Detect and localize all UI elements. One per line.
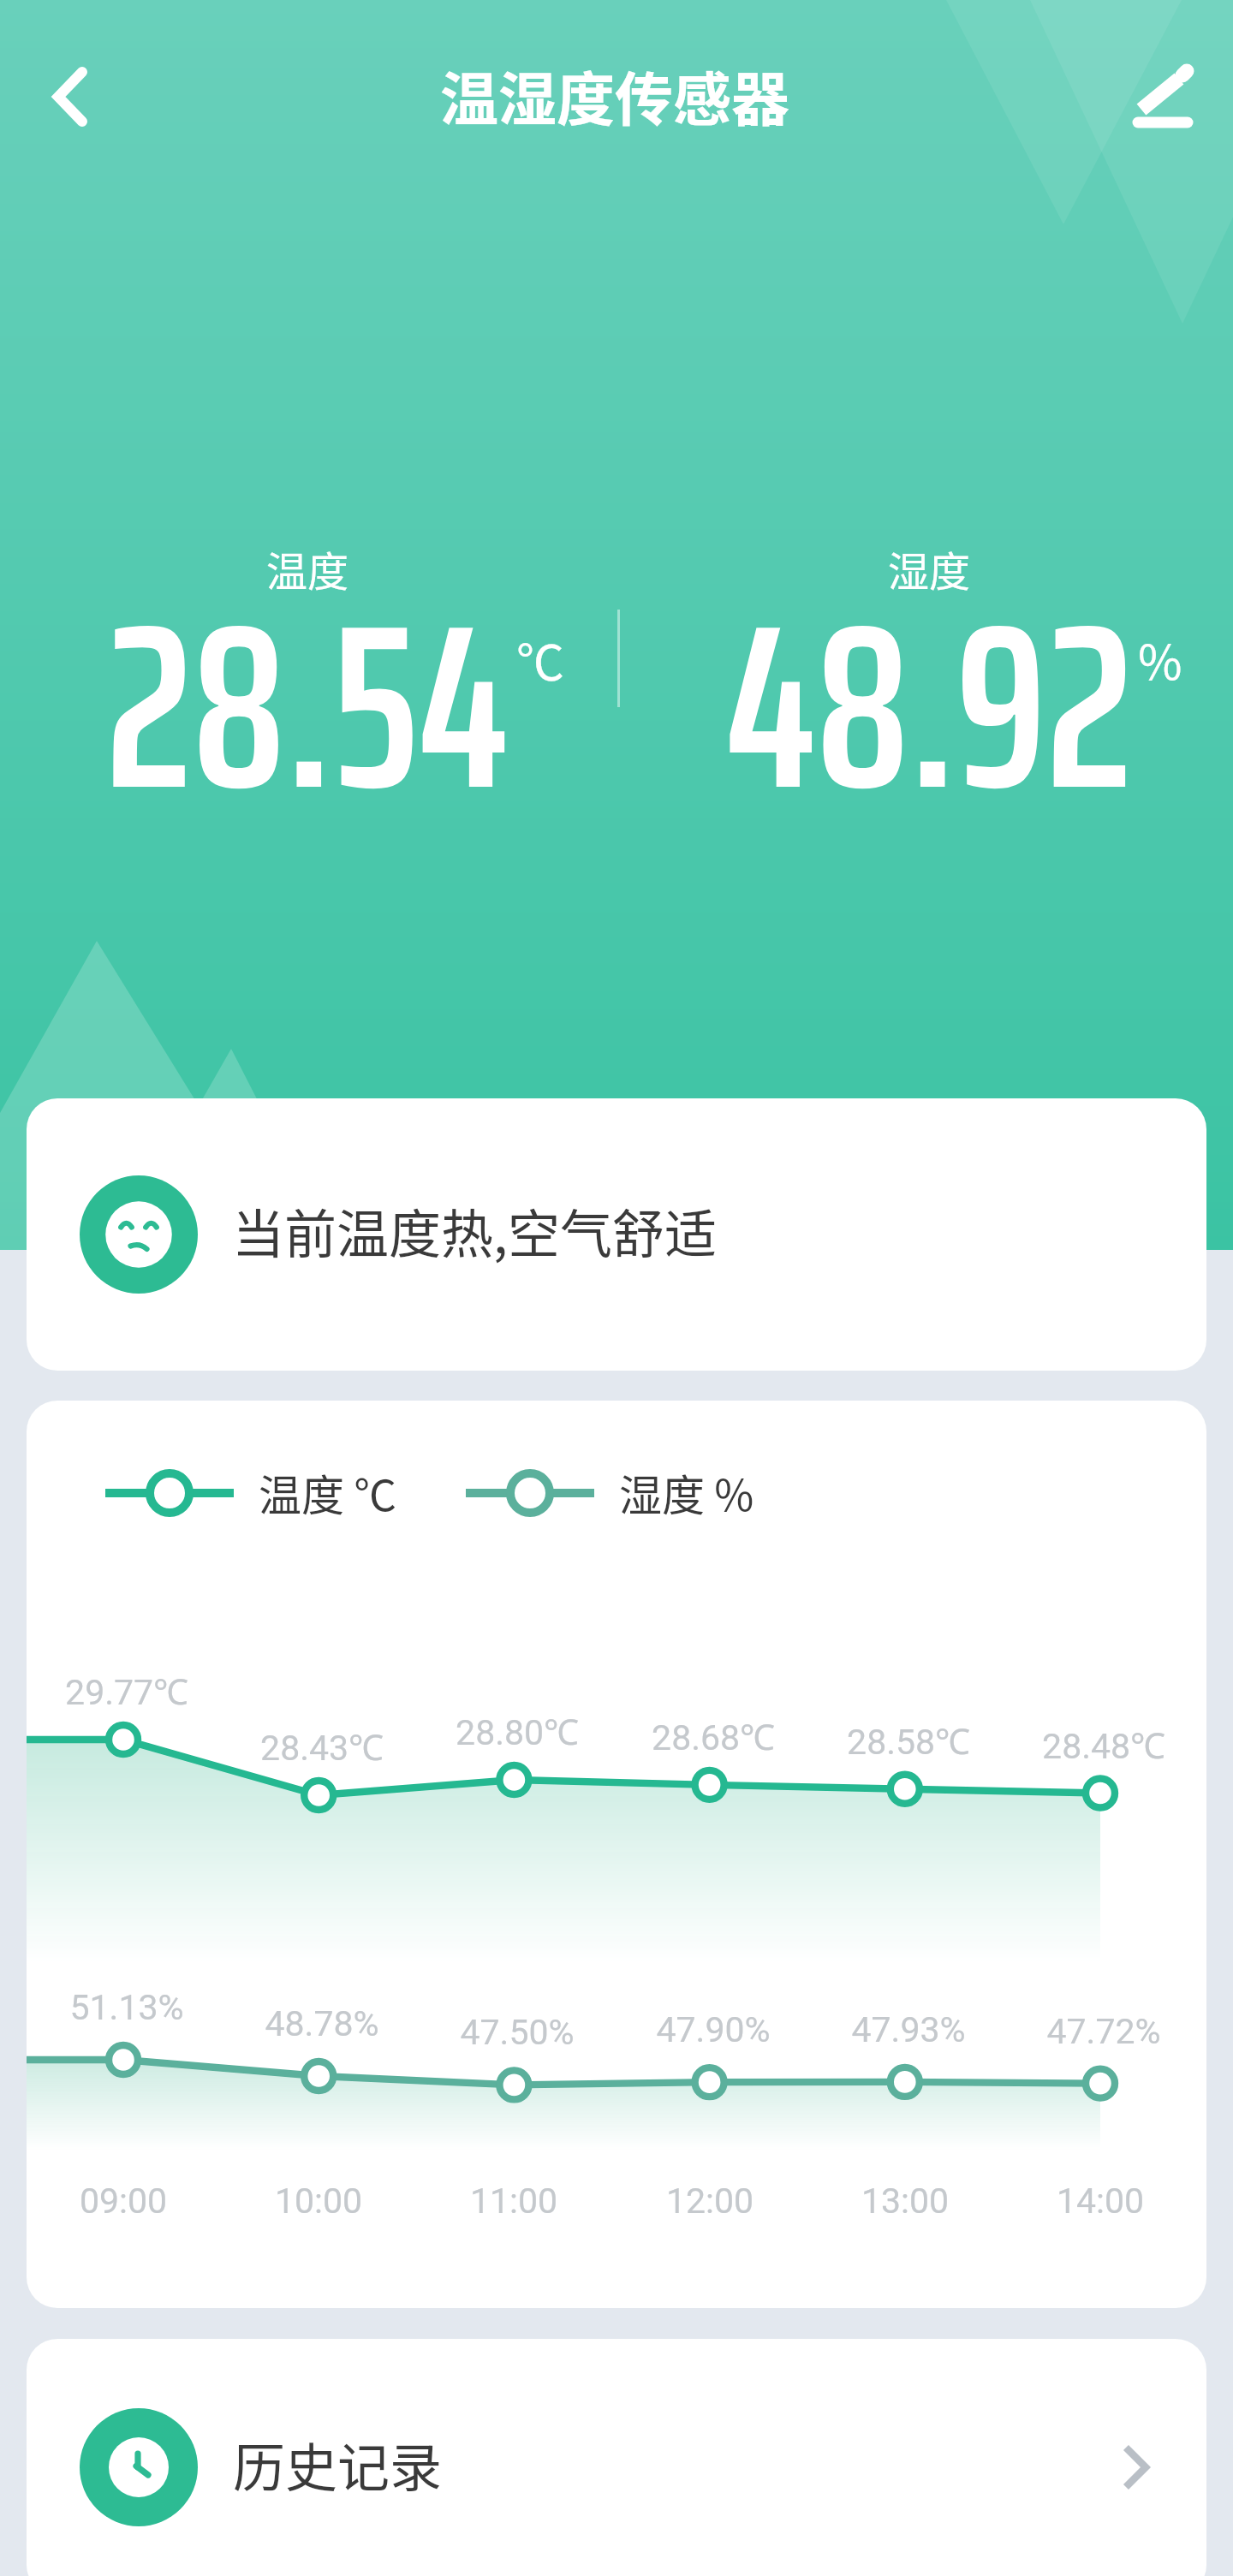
staticText: 湿度 bbox=[587, 538, 1233, 598]
button[interactable]: 温度 ℃ bbox=[105, 1462, 397, 1524]
staticText: 48.78% bbox=[185, 2003, 459, 2044]
staticText: 47.72% bbox=[967, 2011, 1206, 2052]
staticText: 历史记录 bbox=[233, 2426, 443, 2502]
staticText: 10:00 bbox=[182, 2180, 456, 2222]
button[interactable]: Open history bbox=[1107, 2437, 1167, 2497]
staticText: 13:00 bbox=[768, 2180, 1042, 2222]
staticText: % bbox=[1138, 624, 1182, 693]
staticText: 12:00 bbox=[573, 2180, 847, 2222]
staticText: 温度 bbox=[0, 538, 650, 598]
staticText: 28.48℃ bbox=[967, 1721, 1206, 1769]
staticText: 11:00 bbox=[377, 2180, 651, 2222]
button[interactable]: 湿度 % bbox=[466, 1462, 754, 1524]
staticText: 28.80℃ bbox=[380, 1707, 654, 1755]
staticText: 28.68℃ bbox=[576, 1712, 850, 1760]
staticText: 温湿度传感器 bbox=[272, 53, 957, 137]
staticText: 47.93% bbox=[771, 2009, 1045, 2050]
staticText: 当前温度热,空气舒适 bbox=[232, 1193, 717, 1268]
staticText: 29.77℃ bbox=[27, 1667, 264, 1715]
staticText: 09:00 bbox=[27, 2180, 260, 2222]
staticText: ℃ bbox=[516, 624, 564, 693]
staticText: 28.54 bbox=[0, 525, 650, 889]
staticText: 48.92 bbox=[587, 525, 1233, 889]
button[interactable]: 历史记录 bbox=[27, 2339, 1206, 2576]
staticText: 温度 ℃ bbox=[259, 1461, 397, 1523]
button[interactable]: 当前温度热,空气舒适 bbox=[27, 1098, 1206, 1371]
staticText: 51.13% bbox=[27, 1987, 264, 2028]
staticText: 47.90% bbox=[576, 2009, 850, 2050]
staticText: 14:00 bbox=[963, 2180, 1206, 2222]
staticText: 湿度 % bbox=[619, 1461, 754, 1523]
staticText: 47.50% bbox=[380, 2012, 654, 2053]
staticText: 28.58℃ bbox=[771, 1716, 1045, 1764]
button[interactable]: Edit bbox=[1093, 15, 1233, 178]
staticText: 28.43℃ bbox=[185, 1722, 459, 1770]
button[interactable]: Back bbox=[0, 15, 140, 178]
